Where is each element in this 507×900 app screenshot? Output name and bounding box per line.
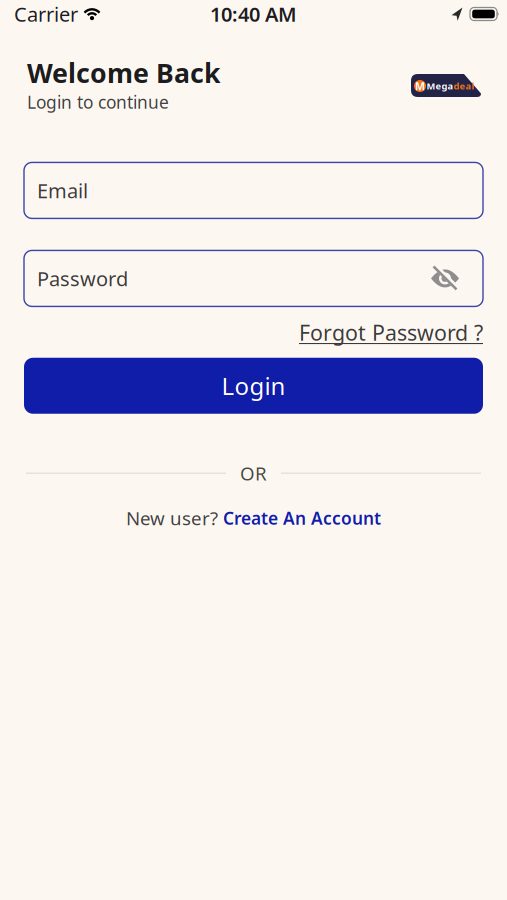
staticText: Login to continue xyxy=(27,90,169,113)
button[interactable]: Show password xyxy=(431,266,459,290)
staticText: Carrier xyxy=(14,1,78,27)
staticText: Email xyxy=(37,177,88,204)
staticText: Create An Account xyxy=(223,506,381,529)
staticText: M xyxy=(415,79,425,93)
staticText: Login xyxy=(221,370,285,402)
staticText: deal xyxy=(453,80,474,92)
staticText: OR xyxy=(240,461,267,486)
staticText: 10:40 AM xyxy=(210,1,297,27)
staticText: Password xyxy=(37,265,128,292)
staticText: Mega xyxy=(426,80,453,92)
staticText: New user? xyxy=(126,506,218,530)
button[interactable]: Create An Account xyxy=(223,506,381,529)
button[interactable]: Login xyxy=(24,358,483,414)
button[interactable]: Forgot Password ? xyxy=(299,318,483,347)
staticText: Forgot Password ? xyxy=(299,318,483,347)
staticText: Welcome Back xyxy=(27,55,221,90)
